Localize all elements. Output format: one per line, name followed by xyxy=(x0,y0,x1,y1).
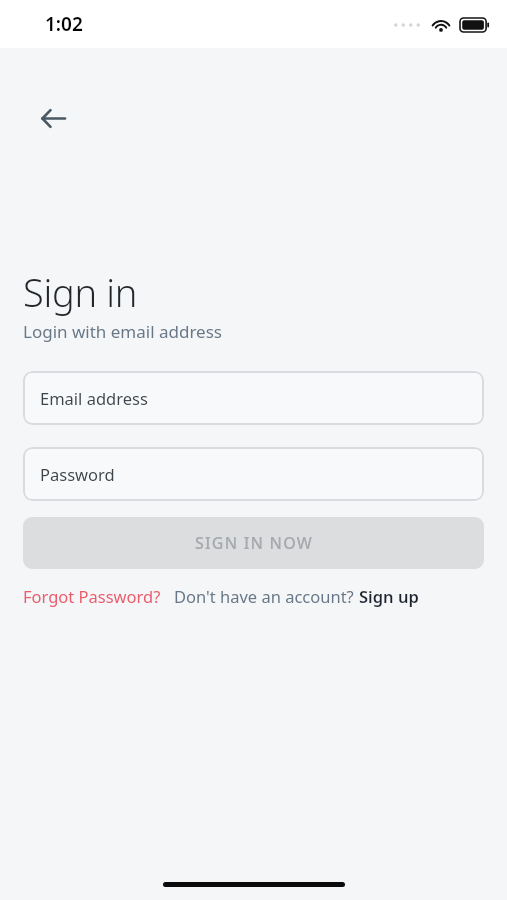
staticText: Login with email address xyxy=(23,320,222,343)
staticText: Forgot Password? xyxy=(23,585,161,607)
staticText: Email address xyxy=(40,387,148,409)
staticText: SIGN IN NOW xyxy=(195,532,313,554)
staticText: Sign up xyxy=(359,585,419,607)
button[interactable]: Password xyxy=(23,447,484,501)
staticText: Don't have an account? xyxy=(174,585,359,607)
staticText: Sign in xyxy=(23,266,138,318)
button[interactable]: Forgot Password? xyxy=(23,581,161,611)
button[interactable]: Email address xyxy=(23,371,484,425)
staticText: 1:02 xyxy=(45,11,83,37)
button[interactable]: Don't have an account? xyxy=(174,581,419,611)
button[interactable]: Back xyxy=(30,95,76,141)
button[interactable]: SIGN IN NOW xyxy=(23,517,484,569)
staticText: Password xyxy=(40,463,115,485)
